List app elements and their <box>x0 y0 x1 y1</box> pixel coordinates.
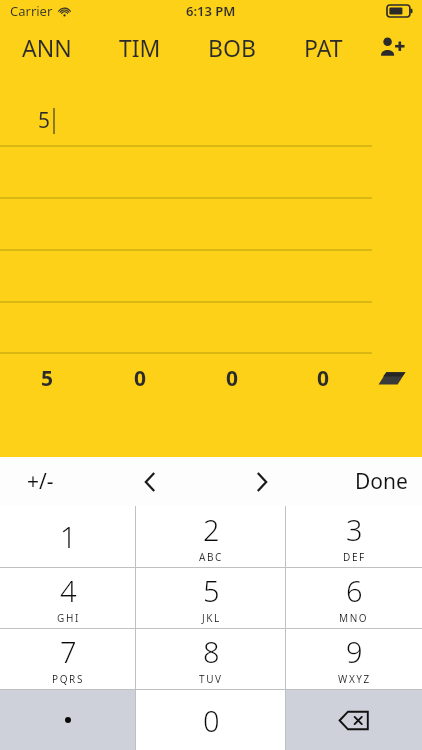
staticText: 7 <box>60 632 77 671</box>
staticText: BOB <box>208 32 256 63</box>
button[interactable]: 4 <box>0 568 136 628</box>
staticText: WXYZ <box>338 672 371 686</box>
button[interactable]: 3 <box>286 506 422 567</box>
staticText: 9 <box>346 632 363 671</box>
staticText: DEF <box>343 550 366 564</box>
staticText: PQRS <box>52 672 84 686</box>
button[interactable]: 0 <box>136 690 286 750</box>
button[interactable]: Done <box>340 457 422 506</box>
button[interactable]: Add player <box>366 22 418 72</box>
staticText: 6 <box>346 571 363 610</box>
staticText: 1 <box>60 517 77 556</box>
staticText: 0 <box>134 364 147 393</box>
staticText: 2 <box>203 510 220 549</box>
staticText: PAT <box>304 32 343 63</box>
button[interactable]: Decimal point <box>0 690 136 750</box>
button[interactable]: PAT <box>277 22 369 72</box>
button[interactable]: 9 <box>286 629 422 689</box>
button[interactable]: ANN <box>1 22 93 72</box>
staticText: ABC <box>199 550 224 564</box>
staticText: 0 <box>226 364 239 393</box>
staticText: 5 <box>203 571 220 610</box>
staticText: JKL <box>202 611 221 625</box>
staticText: Done <box>355 467 408 496</box>
button[interactable]: 6 <box>286 568 422 628</box>
staticText: ANN <box>22 32 72 63</box>
button[interactable]: Erase <box>366 361 418 395</box>
staticText: 5 <box>41 364 54 393</box>
button[interactable]: Next <box>232 457 292 506</box>
button[interactable]: Backspace <box>286 690 422 750</box>
staticText: TIM <box>119 32 161 63</box>
button[interactable]: 8 <box>136 629 286 689</box>
button[interactable]: TIM <box>94 22 186 72</box>
staticText: 0 <box>317 364 330 393</box>
staticText: 5 <box>38 106 51 135</box>
staticText: GHI <box>57 611 80 625</box>
button[interactable]: 2 <box>136 506 286 567</box>
staticText: Carrier <box>10 2 53 20</box>
staticText: 3 <box>346 510 363 549</box>
button[interactable]: BOB <box>186 22 278 72</box>
staticText: 8 <box>203 632 220 671</box>
staticText: 4 <box>60 571 77 610</box>
button[interactable]: Previous <box>120 457 180 506</box>
button[interactable]: 5 <box>136 568 286 628</box>
staticText: MNO <box>339 611 369 625</box>
staticText: +/- <box>27 467 54 496</box>
button[interactable]: 7 <box>0 629 136 689</box>
staticText: 6:13 PM <box>186 2 236 20</box>
staticText: 0 <box>203 701 220 740</box>
staticText: TUV <box>199 672 223 686</box>
button[interactable]: 1 <box>0 506 136 567</box>
button[interactable]: +/- <box>0 457 80 506</box>
